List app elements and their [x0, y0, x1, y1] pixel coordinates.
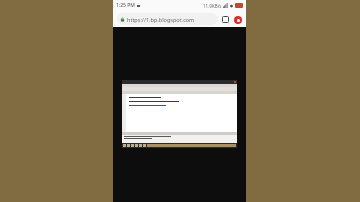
- button[interactable]: https://1.bp.blogspot.com: [117, 13, 218, 25]
- button[interactable]: Menu: [233, 15, 242, 24]
- staticText: https://1.bp.blogspot.com: [127, 16, 195, 23]
- button[interactable]: Tabs: [221, 15, 230, 24]
- staticText: 11.9KB/s: [203, 3, 222, 9]
- staticText: 1:25 PM: [116, 2, 135, 9]
